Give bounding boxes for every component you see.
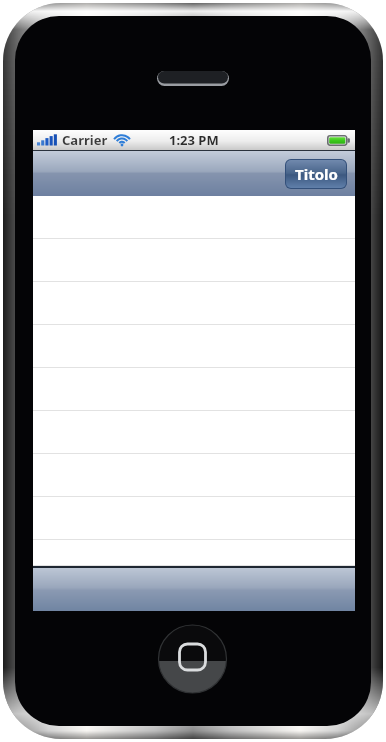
button[interactable]: [33, 411, 355, 454]
button[interactable]: Titolo: [286, 160, 346, 188]
button[interactable]: [33, 368, 355, 411]
button[interactable]: [33, 239, 355, 282]
button[interactable]: [33, 325, 355, 368]
staticText: 1:23 PM: [169, 131, 219, 149]
button[interactable]: [33, 540, 355, 566]
button[interactable]: [33, 568, 355, 611]
staticText: Titolo: [295, 164, 338, 184]
button[interactable]: [33, 497, 355, 540]
staticText: Carrier: [62, 131, 108, 149]
button[interactable]: [33, 454, 355, 497]
button[interactable]: [33, 282, 355, 325]
button[interactable]: [33, 196, 355, 239]
